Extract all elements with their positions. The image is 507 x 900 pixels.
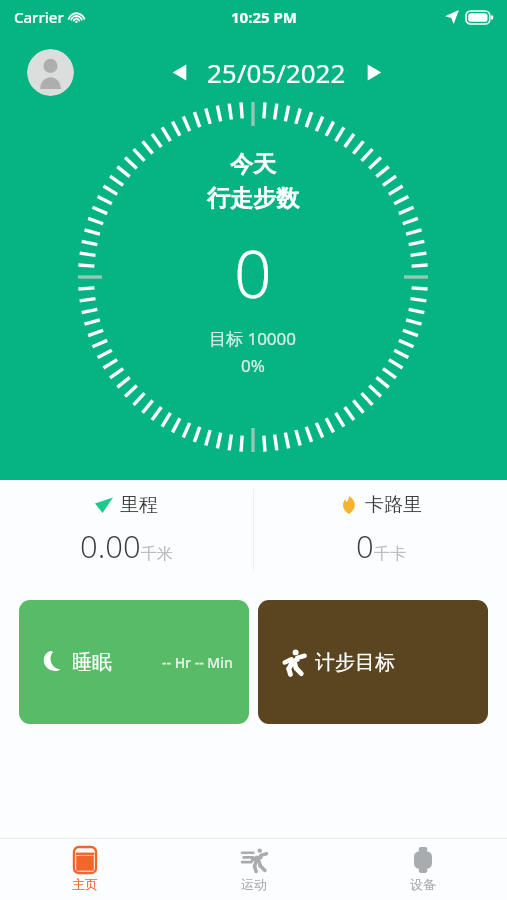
button[interactable]: 睡眠 xyxy=(19,600,249,724)
staticText: 0 xyxy=(356,525,374,567)
button[interactable]: Profile xyxy=(27,49,74,96)
button[interactable]: 计步目标 xyxy=(258,600,488,724)
staticText: 千米 xyxy=(141,544,173,564)
staticText: 睡眠 xyxy=(72,650,112,675)
staticText: 10:25 PM xyxy=(231,7,297,27)
staticText: 0% xyxy=(241,354,265,377)
staticText: 设备 xyxy=(410,876,436,892)
staticText: -- Hr -- Min xyxy=(162,653,233,672)
staticText: 里程 xyxy=(120,493,158,517)
staticText: 25/05/2022 xyxy=(207,55,346,90)
button[interactable]: Next day xyxy=(358,56,390,88)
staticText: 0.00 xyxy=(80,525,141,567)
button[interactable]: Previous day xyxy=(163,56,195,88)
staticText: Carrier xyxy=(14,7,64,27)
staticText: 运动 xyxy=(241,876,267,892)
staticText: 卡路里 xyxy=(365,493,422,517)
button[interactable]: 主页 xyxy=(0,839,169,900)
staticText: 计步目标 xyxy=(315,650,395,675)
staticText: 主页 xyxy=(72,876,98,892)
staticText: 0 xyxy=(234,227,272,317)
button[interactable]: 运动 xyxy=(169,839,338,900)
staticText: 行走步数 xyxy=(207,184,299,213)
staticText: 今天 xyxy=(230,150,276,179)
button[interactable]: 卡路里 xyxy=(254,480,507,580)
staticText: 千卡 xyxy=(374,544,406,564)
button[interactable]: 里程 xyxy=(0,480,253,580)
button[interactable]: 设备 xyxy=(338,839,507,900)
staticText: 目标 10000 xyxy=(209,327,297,350)
